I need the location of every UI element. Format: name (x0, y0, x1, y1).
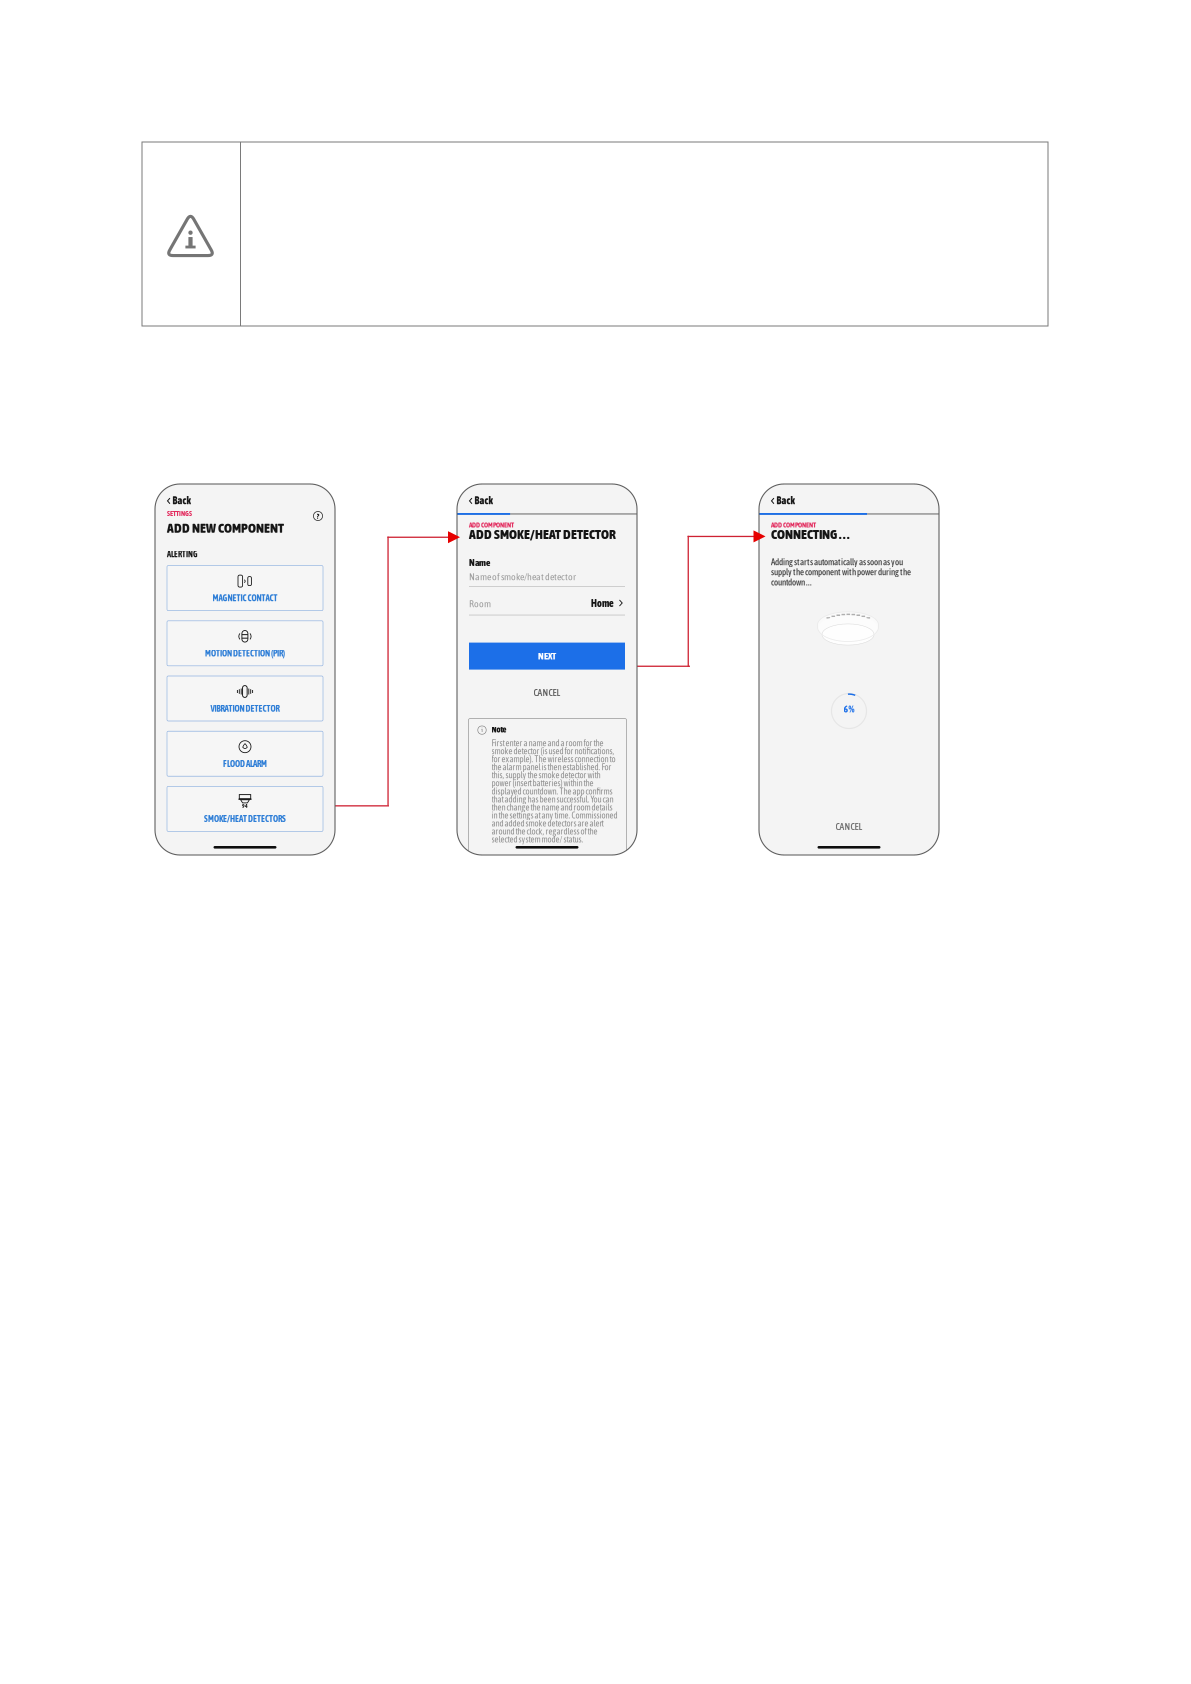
staticText: CONNECTING . . . (771, 526, 849, 542)
button[interactable]: VIBRATION DETECTOR (167, 676, 323, 721)
staticText: CANCEL (533, 687, 560, 698)
staticText: Back (474, 495, 492, 506)
button[interactable]: Help (312, 510, 324, 522)
staticText: Room (469, 598, 491, 609)
button[interactable]: NEXT (469, 643, 625, 670)
staticText: ? (316, 512, 319, 520)
staticText: Name (469, 557, 490, 568)
button[interactable]: CANCEL (469, 686, 625, 699)
staticText: i (481, 726, 483, 734)
staticText: Adding starts automatically as soon as y… (771, 557, 911, 587)
staticText: ADD SMOKE/HEAT DETECTOR (469, 526, 616, 542)
button[interactable]: MOTION DETECTION (PIR) (167, 621, 323, 666)
staticText: ADD COMPONENT (469, 521, 514, 529)
staticText: First enter a name and a room for the sm… (491, 738, 617, 844)
staticText: FLOOD ALARM (223, 759, 267, 769)
button[interactable]: Back (167, 496, 197, 506)
staticText: Back (172, 495, 190, 506)
button[interactable]: FLOOD ALARM (167, 731, 323, 776)
staticText: Back (776, 495, 794, 506)
staticText: 6% (843, 703, 854, 714)
button[interactable]: CANCEL (771, 820, 927, 833)
staticText: SMOKE/HEAT DETECTORS (204, 814, 286, 824)
button[interactable]: Back (469, 496, 499, 506)
staticText: SETTINGS (167, 509, 192, 518)
staticText: Note (491, 725, 506, 734)
staticText: MAGNETIC CONTACT (212, 593, 277, 603)
staticText: CANCEL (835, 821, 862, 832)
staticText: Name of smoke/heat detector (469, 571, 576, 582)
staticText: VIBRATION DETECTOR (210, 703, 279, 714)
staticText: ADD NEW COMPONENT (167, 520, 284, 536)
staticText: MOTION DETECTION (PIR) (205, 648, 285, 658)
staticText: ADD COMPONENT (771, 521, 816, 529)
button[interactable]: Room (469, 597, 625, 611)
button[interactable]: MAGNETIC CONTACT (167, 566, 323, 611)
button[interactable]: 94 (167, 786, 323, 831)
staticText: NEXT (538, 651, 556, 662)
staticText: ALERTING (167, 549, 197, 559)
button[interactable]: Back (771, 496, 801, 506)
staticText: 94 (242, 803, 248, 809)
staticText: Home (591, 598, 614, 609)
